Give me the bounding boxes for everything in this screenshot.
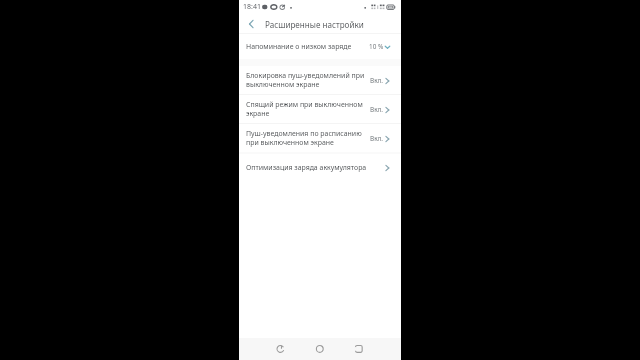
- staticText: Вкл.: [370, 76, 384, 85]
- button[interactable]: Recent apps: [349, 340, 368, 359]
- staticText: Вкл.: [370, 105, 384, 114]
- staticText: Блокировка пуш-уведомлений при выключенн…: [246, 71, 369, 89]
- staticText: Вкл.: [370, 134, 384, 143]
- button[interactable]: Спящий режим при выключенном экране: [239, 95, 401, 123]
- button[interactable]: Оптимизация заряда аккумулятора: [239, 154, 401, 181]
- button[interactable]: Back: [244, 16, 259, 31]
- button[interactable]: Пуш-уведомления по расписанию при выключ…: [239, 124, 401, 152]
- button[interactable]: Home: [310, 340, 329, 359]
- staticText: 10 %: [369, 42, 384, 51]
- staticText: Пуш-уведомления по расписанию при выключ…: [246, 129, 369, 147]
- button[interactable]: Back: [271, 340, 290, 359]
- button[interactable]: Напоминание о низком заряде: [239, 34, 401, 59]
- staticText: Спящий режим при выключенном экране: [246, 100, 369, 118]
- staticText: Напоминание о низком заряде: [246, 42, 369, 51]
- button[interactable]: Блокировка пуш-уведомлений при выключенн…: [239, 66, 401, 94]
- staticText: Расширенные настройки: [265, 19, 364, 30]
- staticText: 18:41: [243, 2, 261, 12]
- staticText: Оптимизация заряда аккумулятора: [246, 163, 369, 172]
